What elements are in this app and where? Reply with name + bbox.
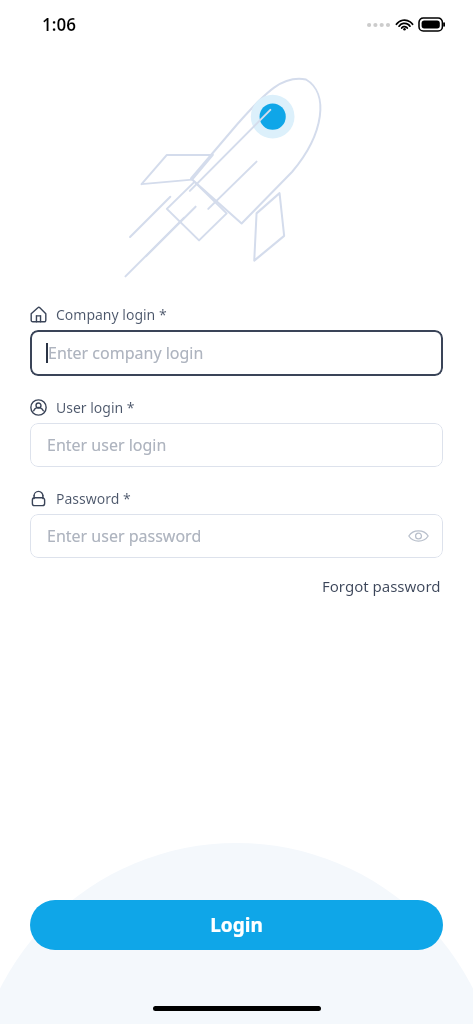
staticText: Company login * [56,305,167,324]
button[interactable]: Forgot password [320,572,443,600]
staticText: Login [210,912,263,938]
button[interactable]: Enter user password [30,514,443,558]
button[interactable]: Show password [407,525,429,547]
button[interactable]: Enter company login [30,330,443,376]
staticText: Forgot password [322,576,441,596]
button[interactable]: Enter user login [30,423,443,467]
staticText: User login * [56,398,135,417]
staticText: 1:06 [42,13,76,36]
button[interactable]: Login [30,900,443,950]
staticText: Enter company login [48,342,204,364]
staticText: Enter user login [47,434,167,456]
staticText: Password * [56,489,131,508]
staticText: Enter user password [47,525,202,547]
